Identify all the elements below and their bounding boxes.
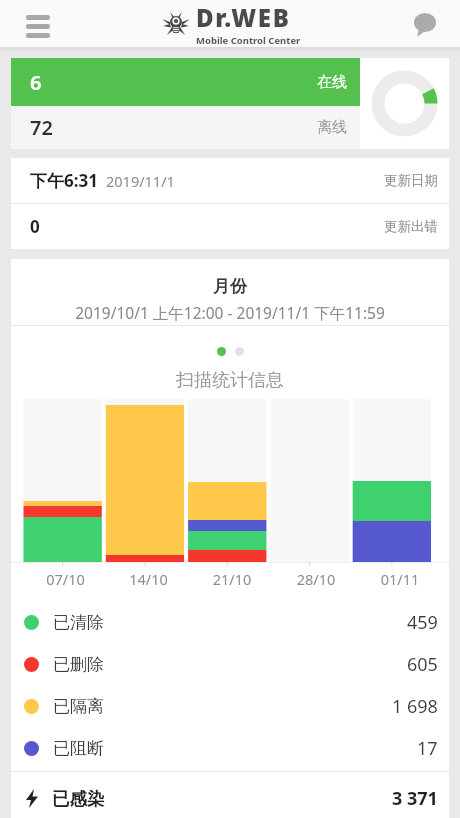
staticText: 已阻断 — [53, 738, 104, 759]
staticText: 在线 — [317, 73, 347, 92]
button[interactable]: 已隔离 — [11, 685, 449, 727]
staticText: 更新出错 — [384, 218, 438, 235]
staticText: 459 — [407, 610, 438, 635]
button[interactable]: 已感染 — [11, 779, 449, 818]
button[interactable] — [414, 12, 438, 36]
staticText: 0 — [30, 215, 40, 238]
button[interactable]: 72 — [11, 106, 360, 149]
button[interactable]: 已清除 — [11, 601, 449, 643]
staticText: 已感染 — [52, 788, 105, 810]
staticText: Dr.WEB — [196, 1, 291, 34]
staticText: 已删除 — [53, 654, 104, 675]
staticText: 月份 — [11, 276, 449, 297]
button[interactable]: 0 — [11, 204, 449, 249]
button[interactable]: 6 — [11, 58, 360, 106]
staticText: 已隔离 — [53, 696, 104, 717]
button[interactable]: 已删除 — [11, 643, 449, 685]
staticText: 28/10 — [274, 569, 358, 589]
staticText: 扫描统计信息 — [11, 369, 449, 392]
staticText: 01/11 — [358, 569, 442, 589]
staticText: 2019/10/1 上午12:00 - 2019/11/1 下午11:59 — [11, 302, 449, 323]
staticText: 07/10 — [24, 569, 107, 589]
staticText: 17 — [417, 736, 438, 761]
staticText: 下午6:31 — [30, 169, 98, 192]
button[interactable]: 下午6:31 — [11, 158, 449, 203]
staticText: 2019/11/1 — [106, 171, 175, 191]
staticText: 605 — [407, 652, 438, 677]
staticText: 72 — [30, 114, 53, 141]
button[interactable]: 已阻断 — [11, 727, 449, 769]
staticText: Mobile Control Center — [196, 34, 301, 47]
staticText: 3 371 — [392, 786, 438, 811]
staticText: 21/10 — [190, 569, 274, 589]
staticText: 已清除 — [53, 612, 104, 633]
staticText: 离线 — [317, 118, 347, 137]
staticText: 14/10 — [107, 569, 190, 589]
button[interactable] — [26, 15, 50, 38]
staticText: 更新日期 — [384, 172, 438, 189]
staticText: 1 698 — [392, 694, 438, 719]
staticText: 6 — [30, 69, 42, 96]
